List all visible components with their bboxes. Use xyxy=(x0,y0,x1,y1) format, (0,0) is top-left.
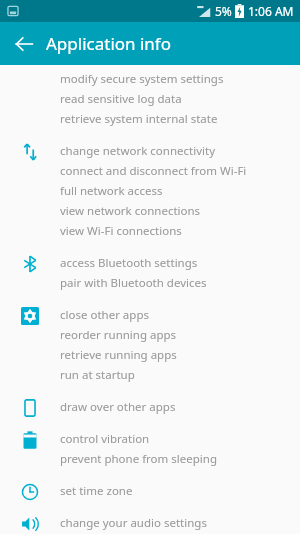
button[interactable]: change network connectivity xyxy=(60,141,292,161)
staticText: draw over other apps xyxy=(60,399,176,415)
staticText: retrieve running apps xyxy=(60,347,177,363)
button[interactable]: view network connections xyxy=(60,201,292,221)
staticText: pair with Bluetooth devices xyxy=(60,275,207,291)
staticText: connect and disconnect from Wi-Fi xyxy=(60,163,247,179)
staticText: 1:06 AM xyxy=(248,3,294,19)
button[interactable]: close other apps xyxy=(60,305,292,325)
staticText: change your audio settings xyxy=(60,515,207,531)
staticText: reorder running apps xyxy=(60,327,177,343)
staticText: set time zone xyxy=(60,483,133,499)
staticText: retrieve system internal state xyxy=(60,111,218,127)
button[interactable]: read sensitive log data xyxy=(60,89,292,109)
button[interactable]: draw over other apps xyxy=(60,397,292,417)
staticText: Application info xyxy=(46,32,172,55)
button[interactable]: run at startup xyxy=(60,365,292,385)
staticText: control vibration xyxy=(60,431,150,447)
staticText: close other apps xyxy=(60,307,149,323)
button[interactable]: view Wi-Fi connections xyxy=(60,221,292,241)
button[interactable]: connect and disconnect from Wi-Fi xyxy=(60,161,292,181)
button[interactable]: control vibration xyxy=(60,429,292,449)
button[interactable]: prevent phone from sleeping xyxy=(60,449,292,469)
button[interactable]: full network access xyxy=(60,181,292,201)
button[interactable]: change your audio settings xyxy=(60,513,292,533)
button[interactable]: retrieve running apps xyxy=(60,345,292,365)
staticText: prevent phone from sleeping xyxy=(60,451,217,467)
staticText: modify secure system settings xyxy=(60,71,224,87)
button[interactable]: retrieve system internal state xyxy=(60,109,292,129)
staticText: change network connectivity xyxy=(60,143,215,159)
button[interactable]: modify secure system settings xyxy=(60,69,292,89)
button[interactable]: reorder running apps xyxy=(60,325,292,345)
staticText: read sensitive log data xyxy=(60,91,182,107)
staticText: access Bluetooth settings xyxy=(60,255,198,271)
staticText: view network connections xyxy=(60,203,201,219)
button[interactable]: pair with Bluetooth devices xyxy=(60,273,292,293)
staticText: view Wi-Fi connections xyxy=(60,223,182,239)
button[interactable]: access Bluetooth settings xyxy=(60,253,292,273)
button[interactable]: Back xyxy=(8,28,40,60)
staticText: 5% xyxy=(215,3,232,19)
button[interactable]: set time zone xyxy=(60,481,292,501)
staticText: run at startup xyxy=(60,367,135,383)
staticText: full network access xyxy=(60,183,163,199)
